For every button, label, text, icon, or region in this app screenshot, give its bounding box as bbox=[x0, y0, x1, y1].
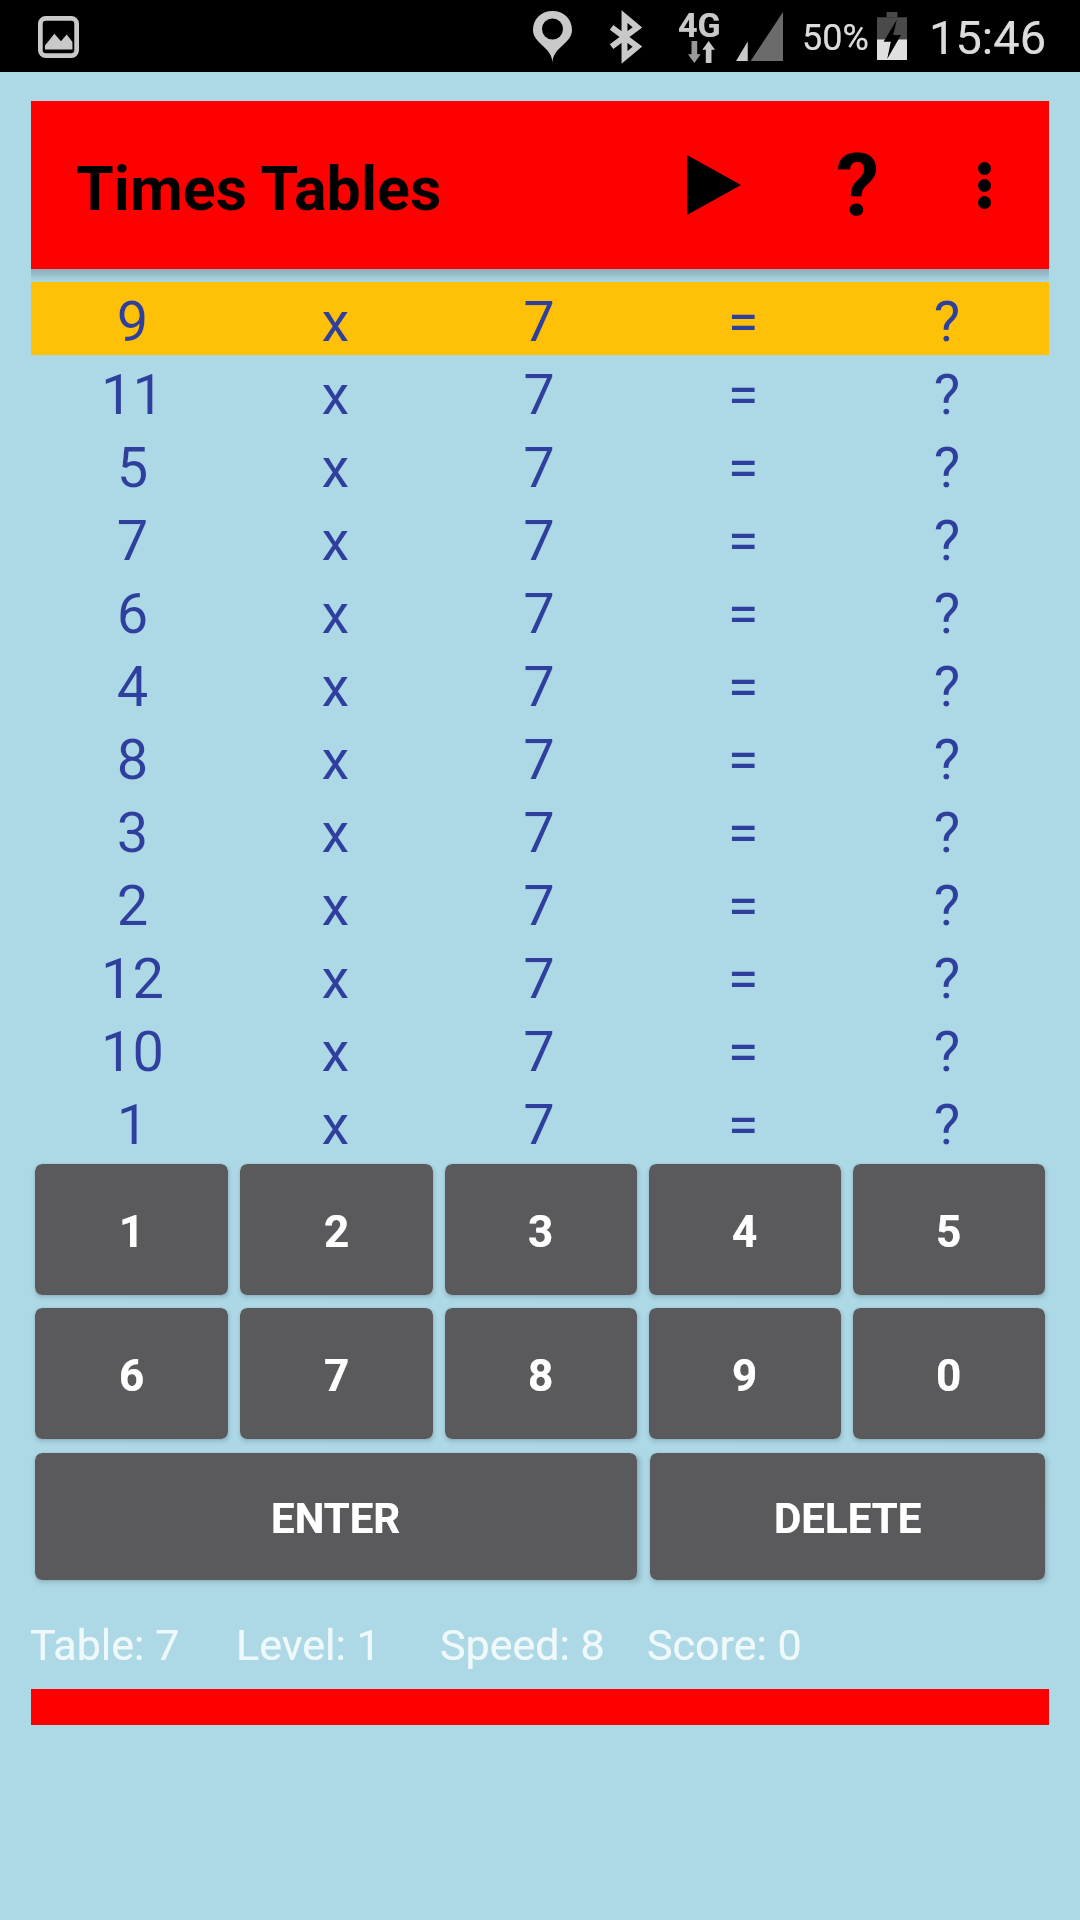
staticText: 3 bbox=[528, 1206, 554, 1258]
staticText: = bbox=[641, 1092, 845, 1158]
staticText: = bbox=[641, 1019, 845, 1085]
staticText: 8 bbox=[31, 727, 234, 793]
button[interactable]: 7 bbox=[31, 501, 1049, 574]
staticText: = bbox=[641, 654, 845, 720]
staticText: 7 bbox=[437, 727, 641, 793]
staticText: = bbox=[641, 800, 845, 866]
button[interactable]: 5 bbox=[31, 428, 1049, 501]
staticText: 7 bbox=[437, 946, 641, 1012]
staticText: x bbox=[234, 435, 437, 501]
staticText: x bbox=[234, 800, 437, 866]
staticText: Times Tables bbox=[76, 153, 442, 224]
button[interactable]: 11 bbox=[31, 355, 1049, 428]
button[interactable]: 0 bbox=[853, 1308, 1045, 1439]
staticText: 8 bbox=[528, 1350, 554, 1402]
button[interactable]: 3 bbox=[445, 1164, 637, 1295]
staticText: ENTER bbox=[271, 1494, 401, 1543]
button[interactable]: More options bbox=[928, 101, 1041, 269]
staticText: x bbox=[234, 873, 437, 939]
button[interactable]: 8 bbox=[31, 720, 1049, 793]
staticText: 7 bbox=[437, 800, 641, 866]
button[interactable]: 2 bbox=[31, 866, 1049, 939]
staticText: 7 bbox=[437, 1092, 641, 1158]
button[interactable]: DELETE bbox=[650, 1453, 1045, 1580]
staticText: ? bbox=[845, 873, 1049, 939]
button[interactable]: 6 bbox=[35, 1308, 228, 1439]
staticText: ? bbox=[845, 1019, 1049, 1085]
staticText: 11 bbox=[31, 362, 234, 428]
staticText: = bbox=[641, 435, 845, 501]
staticText: 5 bbox=[936, 1206, 962, 1258]
button[interactable]: ENTER bbox=[35, 1453, 637, 1580]
staticText: = bbox=[641, 362, 845, 428]
staticText: ? bbox=[845, 362, 1049, 428]
button[interactable]: 10 bbox=[31, 1012, 1049, 1085]
staticText: x bbox=[234, 1092, 437, 1158]
button[interactable]: 2 bbox=[240, 1164, 433, 1295]
staticText: x bbox=[234, 581, 437, 647]
button[interactable]: 12 bbox=[31, 939, 1049, 1012]
button[interactable]: 1 bbox=[35, 1164, 228, 1295]
staticText: 9 bbox=[31, 289, 234, 355]
staticText: ? bbox=[845, 435, 1049, 501]
staticText: 2 bbox=[324, 1206, 350, 1258]
button[interactable]: 3 bbox=[31, 793, 1049, 866]
button[interactable]: 6 bbox=[31, 574, 1049, 647]
staticText: ? bbox=[845, 1092, 1049, 1158]
staticText: 10 bbox=[31, 1019, 234, 1085]
staticText: ? bbox=[845, 727, 1049, 793]
staticText: x bbox=[234, 1019, 437, 1085]
button[interactable]: 5 bbox=[853, 1164, 1045, 1295]
staticText: ? bbox=[845, 946, 1049, 1012]
staticText: 7 bbox=[437, 508, 641, 574]
staticText: 6 bbox=[119, 1350, 145, 1402]
staticText: Table: 7 bbox=[30, 1620, 180, 1670]
staticText: = bbox=[641, 873, 845, 939]
staticText: x bbox=[234, 362, 437, 428]
staticText: ? bbox=[845, 654, 1049, 720]
staticText: 0 bbox=[936, 1350, 962, 1402]
staticText: = bbox=[641, 289, 845, 355]
staticText: x bbox=[234, 508, 437, 574]
staticText: ? bbox=[845, 508, 1049, 574]
staticText: x bbox=[234, 654, 437, 720]
staticText: 5 bbox=[31, 435, 234, 501]
staticText: = bbox=[641, 508, 845, 574]
staticText: DELETE bbox=[774, 1494, 922, 1543]
staticText: 2 bbox=[31, 873, 234, 939]
staticText: 6 bbox=[31, 581, 234, 647]
staticText: 1 bbox=[119, 1206, 145, 1258]
button[interactable]: 8 bbox=[445, 1308, 637, 1439]
staticText: 15:46 bbox=[929, 10, 1047, 65]
staticText: ? bbox=[845, 581, 1049, 647]
staticText: 9 bbox=[732, 1350, 758, 1402]
button[interactable]: 4 bbox=[31, 647, 1049, 720]
staticText: ? bbox=[845, 800, 1049, 866]
staticText: 50% bbox=[802, 17, 869, 59]
staticText: 4G bbox=[678, 5, 721, 45]
button[interactable]: 9 bbox=[649, 1308, 841, 1439]
staticText: 12 bbox=[31, 946, 234, 1012]
button[interactable]: Help bbox=[801, 101, 914, 269]
staticText: Level: 1 bbox=[236, 1620, 381, 1670]
staticText: x bbox=[234, 946, 437, 1012]
button[interactable]: 1 bbox=[31, 1085, 1049, 1158]
staticText: 3 bbox=[31, 800, 234, 866]
button[interactable]: Play bbox=[657, 101, 770, 269]
staticText: Score: 0 bbox=[647, 1620, 802, 1670]
button[interactable]: 4 bbox=[649, 1164, 841, 1295]
staticText: ? bbox=[845, 289, 1049, 355]
staticText: Speed: 8 bbox=[440, 1620, 605, 1670]
staticText: 7 bbox=[437, 1019, 641, 1085]
button[interactable]: 7 bbox=[240, 1308, 433, 1439]
staticText: 7 bbox=[437, 873, 641, 939]
staticText: = bbox=[641, 727, 845, 793]
staticText: = bbox=[641, 581, 845, 647]
staticText: 4 bbox=[732, 1206, 758, 1258]
button[interactable]: 9 bbox=[31, 282, 1049, 355]
staticText: ? bbox=[836, 134, 880, 236]
staticText: 7 bbox=[437, 654, 641, 720]
staticText: 7 bbox=[437, 289, 641, 355]
staticText: x bbox=[234, 289, 437, 355]
staticText: x bbox=[234, 727, 437, 793]
